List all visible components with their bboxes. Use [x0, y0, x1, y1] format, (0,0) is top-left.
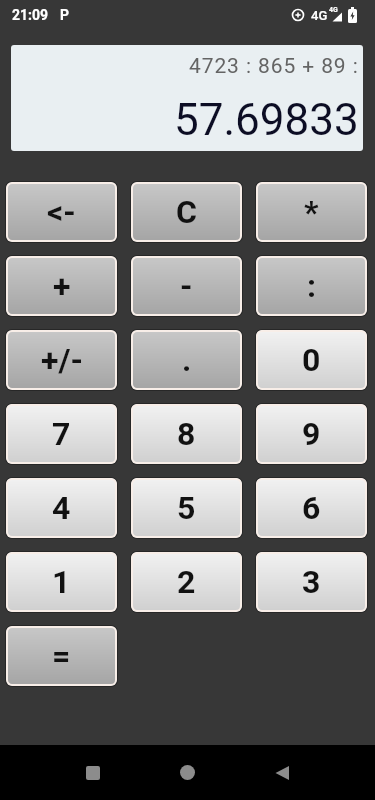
staticText: 4 — [52, 489, 71, 527]
staticText: 8 — [177, 415, 196, 453]
button[interactable]: 1 — [5, 551, 118, 613]
button[interactable]: * — [255, 181, 368, 243]
button[interactable]: 2 — [130, 551, 243, 613]
button[interactable] — [275, 766, 289, 780]
button[interactable]: 7 — [5, 403, 118, 465]
staticText: 0 — [302, 341, 321, 379]
staticText: P — [60, 7, 70, 23]
button[interactable]: : — [255, 255, 368, 317]
button[interactable]: . — [130, 329, 243, 391]
staticText: 4723 : 865 + 89 : — [189, 54, 359, 79]
staticText: : — [307, 267, 317, 305]
button[interactable] — [86, 766, 100, 780]
staticText: +/- — [41, 341, 83, 379]
button[interactable]: = — [5, 625, 118, 687]
button[interactable]: <- — [5, 181, 118, 243]
staticText: . — [182, 341, 192, 379]
staticText: * — [304, 193, 319, 231]
button[interactable]: 0 — [255, 329, 368, 391]
button[interactable]: 5 — [130, 477, 243, 539]
button[interactable] — [180, 765, 195, 780]
staticText: 4G — [311, 8, 328, 23]
staticText: 2 — [177, 563, 196, 601]
staticText: 4G — [329, 6, 338, 14]
button[interactable]: +/- — [5, 329, 118, 391]
button[interactable]: 8 — [130, 403, 243, 465]
staticText: 7 — [52, 415, 71, 453]
staticText: 6 — [302, 489, 321, 527]
button[interactable]: - — [130, 255, 243, 317]
staticText: 21:09 — [12, 7, 49, 23]
button[interactable]: 3 — [255, 551, 368, 613]
staticText: = — [52, 637, 71, 675]
staticText: 3 — [302, 563, 321, 601]
staticText: + — [53, 267, 71, 305]
button[interactable]: 4 — [5, 477, 118, 539]
staticText: 1 — [52, 563, 71, 601]
staticText: - — [180, 267, 193, 305]
button[interactable]: 6 — [255, 477, 368, 539]
staticText: 57.69833 — [174, 94, 359, 146]
staticText: <- — [47, 193, 76, 231]
button[interactable]: C — [130, 181, 243, 243]
staticText: C — [176, 193, 197, 231]
button[interactable]: + — [5, 255, 118, 317]
staticText: 5 — [177, 489, 196, 527]
staticText: 9 — [302, 415, 321, 453]
button[interactable]: 9 — [255, 403, 368, 465]
